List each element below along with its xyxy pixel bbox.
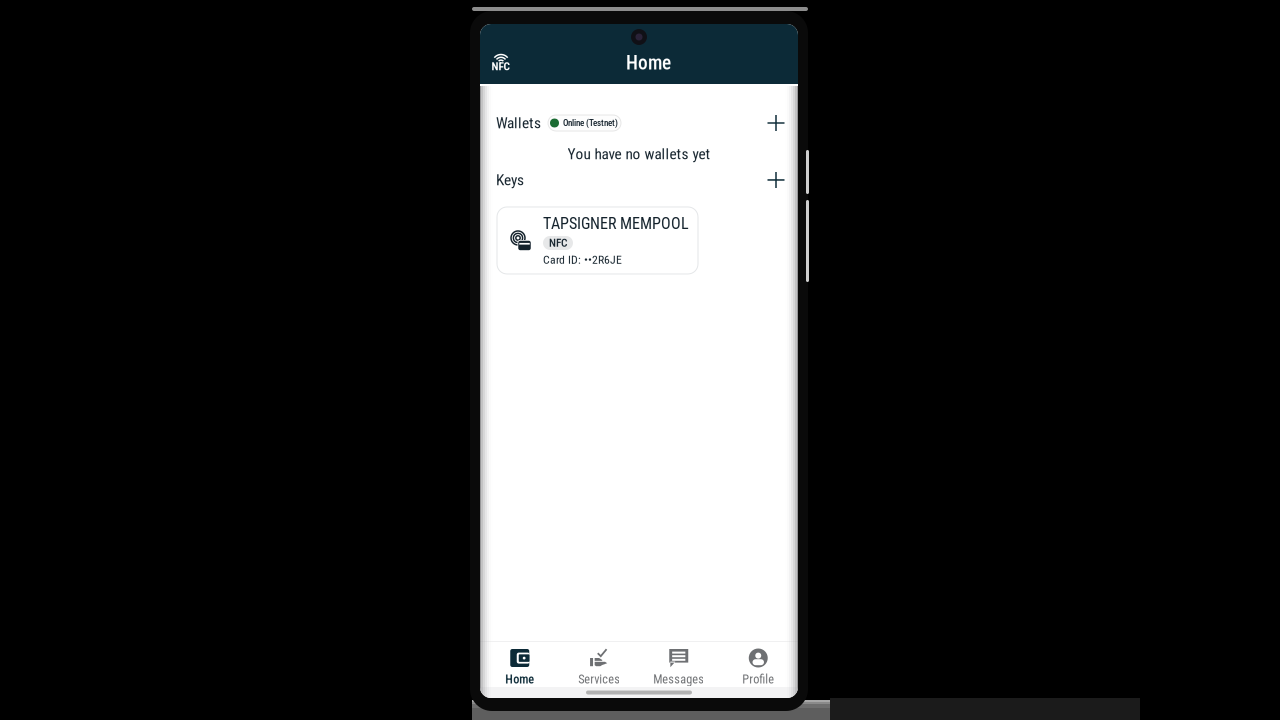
button[interactable]: TAPSIGNER MEMPOOL (497, 207, 698, 274)
staticText: TAPSIGNER MEMPOOL (543, 214, 689, 233)
staticText: Keys (496, 171, 524, 189)
staticText: Messages (653, 672, 704, 686)
button[interactable]: Profile (718, 642, 798, 687)
button[interactable]: Messages (639, 642, 718, 687)
button[interactable]: Scan NFC tag (488, 50, 514, 72)
staticText: You have no wallets yet (567, 145, 710, 163)
button[interactable]: Services (559, 642, 639, 687)
staticText: Online (Testnet) (563, 118, 618, 128)
staticText: Home (626, 51, 671, 74)
button[interactable]: Home (480, 642, 559, 687)
staticText: Card ID: ••2R6JE (543, 253, 622, 267)
button[interactable]: Add key (759, 163, 793, 197)
button[interactable]: Add wallet (759, 106, 793, 140)
staticText: NFC (491, 60, 509, 73)
staticText: Wallets (496, 114, 541, 132)
staticText: Services (578, 672, 620, 686)
staticText: Home (505, 672, 534, 686)
staticText: Profile (742, 672, 774, 686)
staticText: NFC (549, 236, 567, 250)
